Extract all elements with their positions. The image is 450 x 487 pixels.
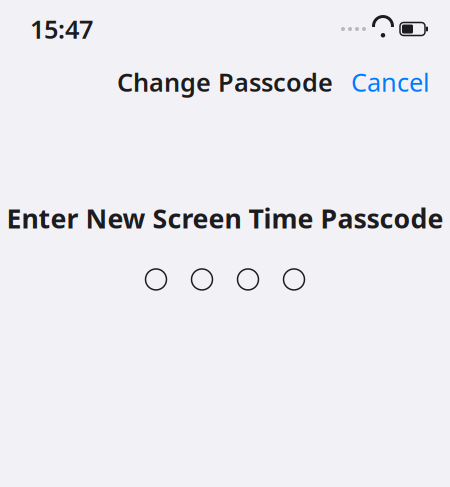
staticText: 15:47	[30, 12, 93, 46]
button[interactable]: Cancel	[341, 59, 440, 105]
staticText: Cancel	[351, 65, 430, 99]
staticText: Change Passcode	[117, 65, 333, 99]
staticText: Enter New Screen Time Passcode	[6, 200, 443, 236]
